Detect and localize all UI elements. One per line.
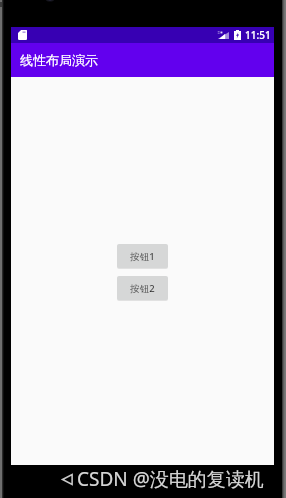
button[interactable]: 线性布局演示 (11, 43, 274, 77)
button[interactable]: 按钮2 (117, 276, 168, 300)
staticText: 11:51 (245, 28, 271, 42)
other: Notification (18, 30, 27, 40)
button[interactable]: Back (62, 466, 264, 492)
staticText: 线性布局演示 (20, 52, 98, 68)
button[interactable]: 按钮1 (117, 244, 168, 268)
staticText: CSDN @没电的复读机 (77, 466, 264, 492)
staticText: 按钮2 (130, 282, 155, 295)
staticText: 按钮1 (130, 250, 155, 263)
